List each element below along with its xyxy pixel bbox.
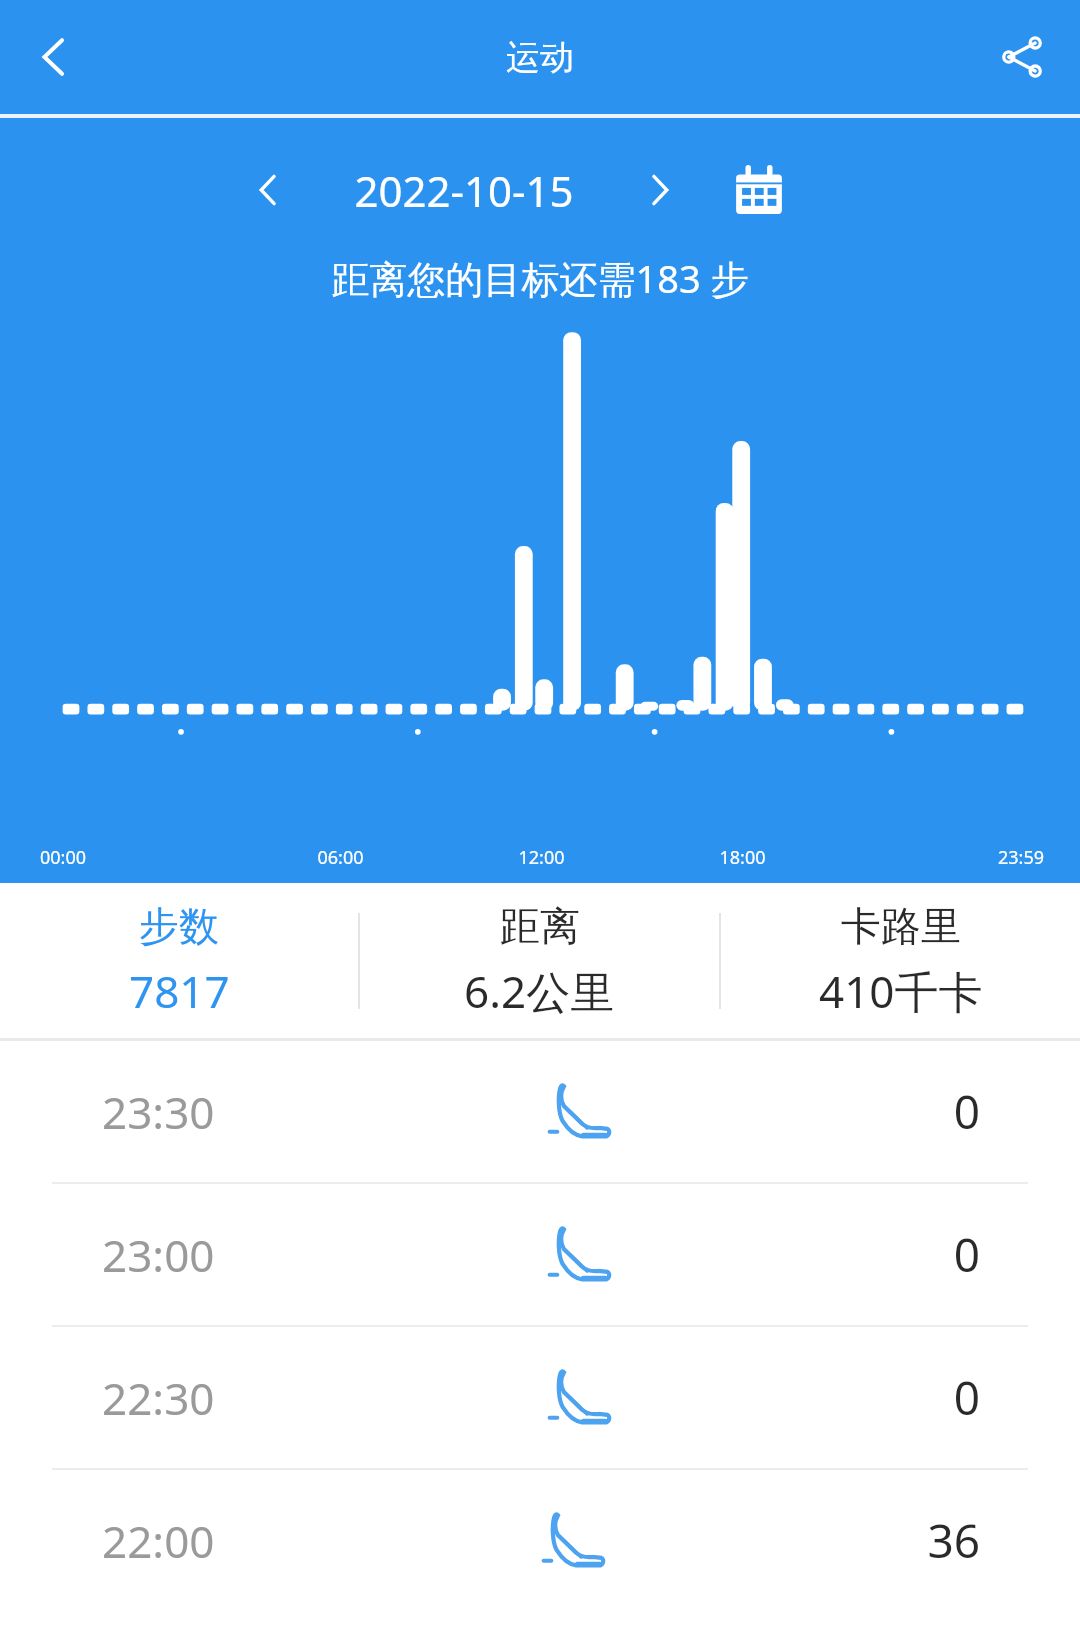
button[interactable]: 距离 (360, 901, 719, 1021)
staticText: 12:00 (441, 845, 642, 870)
staticText: 距离 (500, 901, 580, 951)
button[interactable]: Share (984, 19, 1060, 95)
staticText: 22:00 (102, 1511, 215, 1571)
other: Steps (535, 1356, 619, 1440)
staticText: 00:00 (40, 845, 240, 870)
button[interactable]: Previous day (232, 154, 304, 226)
button[interactable]: 步数 (0, 901, 358, 1021)
staticText: 22:30 (102, 1368, 215, 1428)
other: Steps (529, 1499, 613, 1583)
button[interactable]: 23:30 (0, 1041, 1080, 1182)
other: Steps (535, 1213, 619, 1297)
button[interactable]: 22:30 (0, 1327, 1080, 1468)
button[interactable]: 23:00 (0, 1184, 1080, 1325)
staticText: 2022-10-15 (304, 162, 624, 219)
staticText: 06:00 (240, 845, 441, 870)
staticText: 7817 (129, 961, 230, 1021)
staticText: 6.2公里 (464, 961, 615, 1021)
button[interactable]: 22:00 (0, 1470, 1080, 1611)
button[interactable]: Back (18, 21, 90, 93)
staticText: 0 (940, 1223, 980, 1286)
button[interactable]: Calendar (724, 155, 794, 225)
staticText: 23:00 (102, 1225, 215, 1285)
button[interactable]: Next day (624, 154, 696, 226)
other: Steps (535, 1070, 619, 1154)
staticText: 23:30 (102, 1082, 215, 1142)
staticText: 0 (940, 1366, 980, 1429)
staticText: 410千卡 (819, 961, 983, 1021)
staticText: 0 (940, 1080, 980, 1143)
staticText: 运动 (506, 36, 574, 79)
button[interactable]: 卡路里 (721, 901, 1080, 1021)
staticText: 步数 (139, 901, 219, 951)
staticText: 23:59 (843, 845, 1044, 870)
staticText: 36 (927, 1509, 980, 1572)
staticText: 18:00 (642, 845, 843, 870)
staticText: 卡路里 (841, 901, 961, 951)
staticText: 距离您的目标还需183 步 (0, 252, 1080, 304)
